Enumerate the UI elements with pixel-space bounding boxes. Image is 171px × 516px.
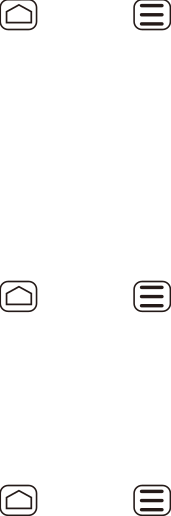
button[interactable]: Menu: [131, 0, 171, 32]
button[interactable]: Menu: [131, 482, 171, 516]
button[interactable]: Home: [0, 0, 39, 32]
button[interactable]: Home: [0, 278, 39, 314]
button[interactable]: Menu: [131, 278, 171, 314]
button[interactable]: Home: [0, 482, 39, 516]
